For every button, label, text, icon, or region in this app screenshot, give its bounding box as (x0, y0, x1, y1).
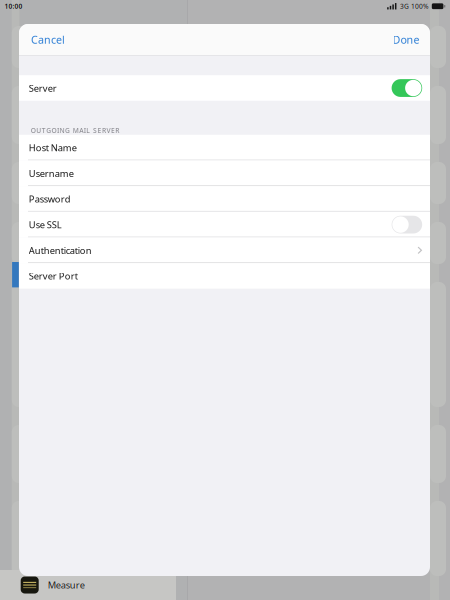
staticText: Authentication (29, 244, 92, 256)
button[interactable]: Done (382, 24, 430, 55)
button[interactable]: Host Name (19, 135, 430, 160)
staticText: Done (392, 32, 419, 47)
staticText: Use SSL (29, 218, 62, 231)
button[interactable]: Username (19, 160, 430, 186)
staticText: Cancel (31, 32, 65, 47)
staticText: Host Name (29, 141, 77, 154)
button[interactable]: Use SSL (19, 212, 430, 237)
button[interactable]: Server Port (19, 263, 430, 289)
staticText: Password (29, 193, 71, 205)
button[interactable]: Cancel (19, 24, 75, 55)
staticText: Username (29, 167, 74, 179)
staticText: 3G 100% (400, 2, 429, 11)
staticText: 10:00 (4, 2, 22, 11)
staticText: Measure (48, 579, 85, 591)
button[interactable]: Server (392, 79, 422, 97)
staticText: Server Port (29, 270, 78, 282)
button[interactable]: Authentication (19, 237, 430, 263)
staticText: OUTGOING MAIL SERVER (31, 126, 119, 135)
button[interactable]: Server (19, 75, 430, 101)
button[interactable]: Password (19, 186, 430, 212)
staticText: Server (29, 82, 57, 94)
button[interactable]: Use SSL (392, 216, 422, 233)
